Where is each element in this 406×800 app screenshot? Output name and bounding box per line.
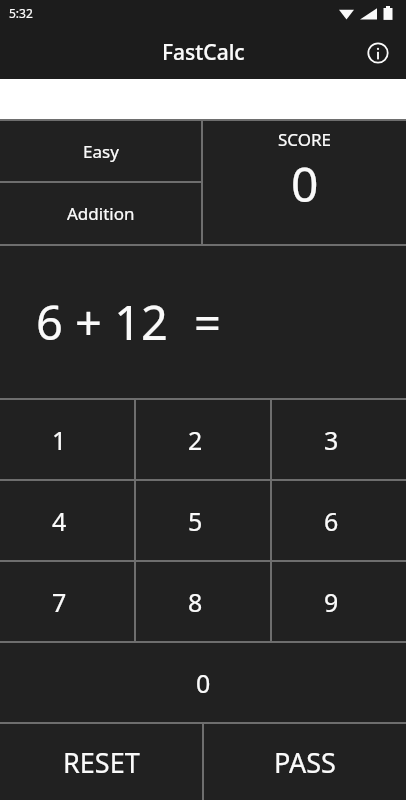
staticText: = [194, 290, 221, 354]
staticText: 4 [52, 504, 67, 538]
staticText: Addition [67, 202, 135, 225]
staticText: 3 [324, 423, 339, 457]
staticText: PASS [274, 744, 336, 781]
button[interactable]: 5 [136, 481, 270, 560]
staticText: 6 [324, 504, 339, 538]
staticText: 8 [188, 585, 203, 619]
button[interactable]: 1 [0, 400, 134, 479]
staticText: 5 [188, 504, 203, 538]
button[interactable]: 7 [0, 562, 134, 641]
staticText: FastCalc [162, 38, 245, 67]
staticText: RESET [63, 744, 140, 781]
staticText: 7 [52, 585, 67, 619]
button[interactable]: Easy [0, 121, 201, 181]
button[interactable]: 3 [272, 400, 406, 479]
button[interactable]: Info [362, 37, 394, 69]
button[interactable]: RESET [0, 724, 202, 800]
staticText: 2 [188, 423, 203, 457]
staticText: 0 [196, 666, 211, 700]
staticText: 0 [291, 151, 319, 216]
staticText: 9 [324, 585, 339, 619]
button[interactable]: Addition [0, 183, 201, 244]
button[interactable]: 6 [272, 481, 406, 560]
button[interactable]: PASS [204, 724, 406, 800]
button[interactable]: 4 [0, 481, 134, 560]
staticText: 6 + 12 [36, 290, 168, 354]
staticText: 1 [52, 423, 67, 457]
button[interactable]: 9 [272, 562, 406, 641]
button[interactable]: 0 [0, 643, 406, 722]
button[interactable]: 2 [136, 400, 270, 479]
button[interactable]: 8 [136, 562, 270, 641]
staticText: SCORE [278, 128, 332, 151]
staticText: Easy [83, 140, 119, 163]
staticText: 5:32 [9, 5, 33, 21]
